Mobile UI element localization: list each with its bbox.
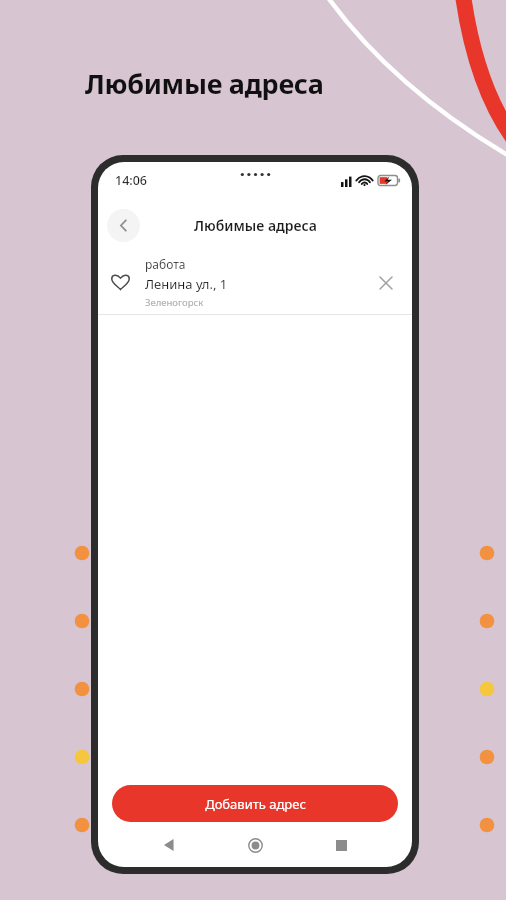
button[interactable]: работа — [98, 251, 412, 314]
button[interactable]: Back — [107, 209, 140, 242]
staticText: 14:06 — [115, 172, 148, 189]
staticText: Зеленогорск — [145, 296, 204, 309]
staticText: работа — [145, 256, 186, 272]
button[interactable]: Recent apps — [326, 830, 356, 860]
staticText: Любимые адреса — [194, 216, 317, 235]
button[interactable]: Home — [240, 830, 270, 860]
button[interactable]: Back — [154, 830, 184, 860]
staticText: Любимые адреса — [85, 65, 324, 102]
staticText: Ленина ул., 1 — [145, 275, 228, 293]
button[interactable]: Remove address — [372, 269, 400, 297]
button[interactable]: Добавить адрес — [112, 785, 398, 822]
staticText: Добавить адрес — [205, 795, 306, 813]
